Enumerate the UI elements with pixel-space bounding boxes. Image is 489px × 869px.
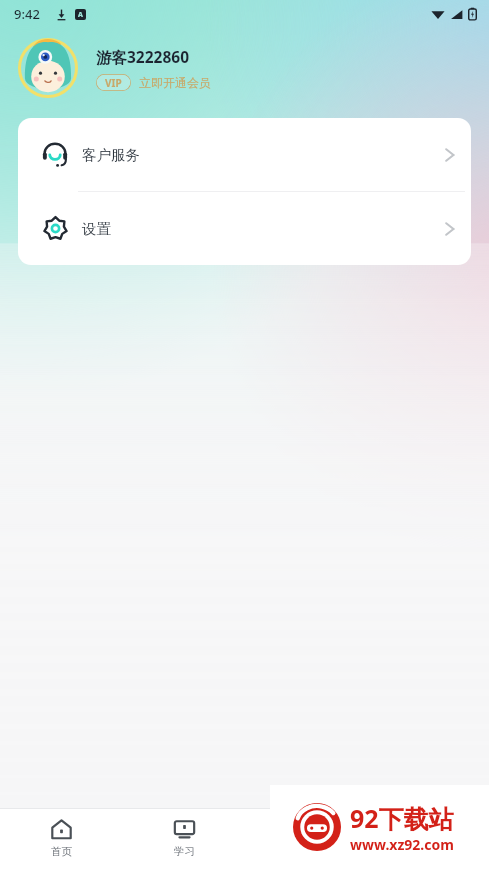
staticText: 立即开通会员 — [139, 75, 211, 90]
other: Settings — [43, 216, 68, 241]
staticText: www.xz92.com — [350, 835, 454, 854]
button[interactable]: Settings — [18, 192, 471, 265]
staticText: 9:42 — [14, 5, 40, 23]
staticText: 游客3222860 — [96, 46, 190, 67]
other: Profile avatar — [18, 38, 78, 98]
button[interactable]: Customer service — [18, 118, 471, 191]
staticText: VIP — [105, 76, 122, 90]
staticText: 92下载站 — [350, 801, 454, 835]
staticText: 设置 — [82, 220, 111, 238]
staticText: A — [78, 10, 83, 20]
button[interactable]: 学习 — [123, 809, 245, 869]
button[interactable]: Profile avatar — [0, 35, 489, 101]
button[interactable]: 首页 — [0, 809, 123, 869]
staticText: 客户服务 — [82, 146, 140, 164]
staticText: 首页 — [51, 845, 72, 858]
staticText: 学习 — [174, 845, 195, 858]
other: Customer service — [42, 142, 68, 168]
